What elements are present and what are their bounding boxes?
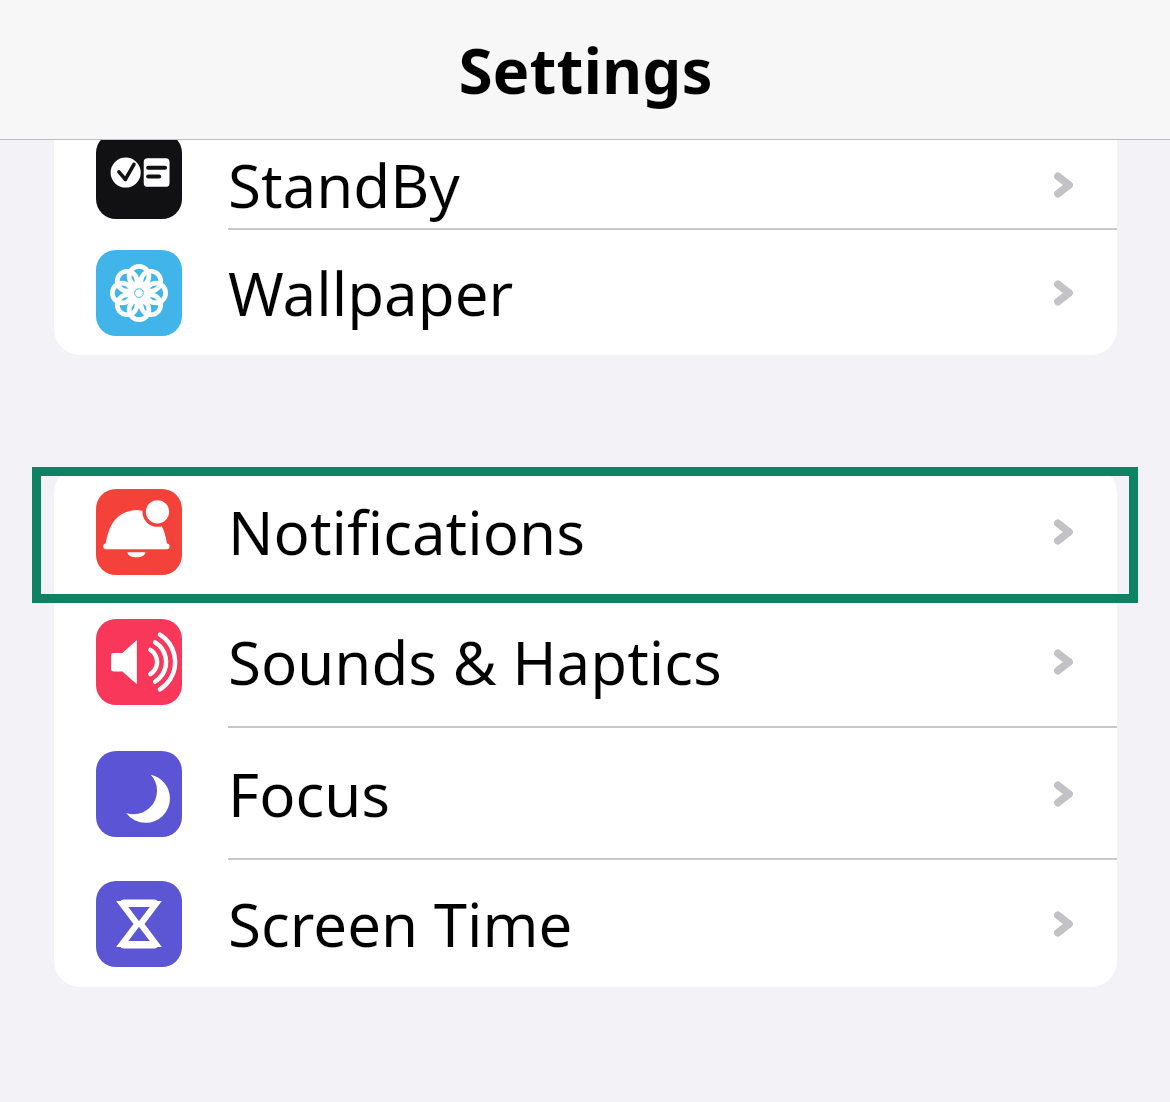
button[interactable]: Wallpaper: [54, 230, 1117, 355]
staticText: Focus: [228, 753, 391, 835]
button[interactable]: Sounds & Haptics: [54, 596, 1117, 728]
other: Selected element highlight: [32, 467, 1138, 603]
staticText: StandBy: [228, 144, 460, 226]
staticText: Sounds & Haptics: [228, 621, 722, 703]
staticText: Screen Time: [228, 883, 573, 965]
staticText: Wallpaper: [228, 252, 514, 334]
button[interactable]: Notifications: [54, 467, 1117, 596]
button[interactable]: StandBy: [54, 140, 1117, 230]
staticText: Settings: [458, 28, 713, 112]
staticText: Notifications: [228, 491, 585, 573]
button[interactable]: Screen Time: [54, 860, 1117, 987]
button[interactable]: Focus: [54, 728, 1117, 860]
